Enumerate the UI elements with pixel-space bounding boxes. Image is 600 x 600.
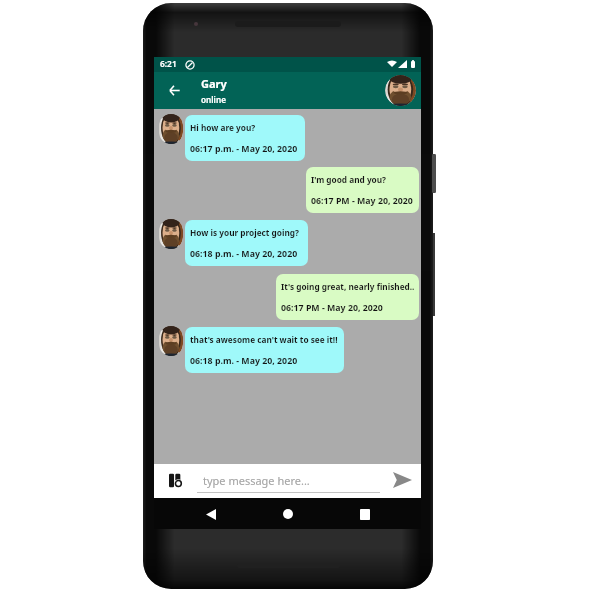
staticText: that's awesome can't wait to see it!! (190, 334, 338, 345)
staticText: 06:17 p.m. - May 20, 2020 (190, 143, 298, 155)
button[interactable]: How is your project going? (185, 220, 308, 266)
button[interactable]: It's going great, nearly finished.. (276, 274, 419, 320)
button[interactable]: that's awesome can't wait to see it!! (185, 327, 344, 373)
button[interactable]: Hi how are you? (185, 115, 305, 161)
staticText: I'm good and you? (311, 174, 387, 185)
button[interactable]: Send (393, 472, 412, 488)
staticText: online (201, 94, 226, 105)
staticText: 06:18 p.m. - May 20, 2020 (190, 355, 298, 367)
staticText: How is your project going? (190, 227, 299, 238)
button[interactable]: Back (198, 501, 224, 527)
button[interactable]: Gary profile photo (385, 75, 416, 106)
button[interactable]: Recent apps (352, 501, 378, 527)
staticText: 06:18 p.m. - May 20, 2020 (190, 248, 298, 260)
button[interactable]: Home (275, 501, 301, 527)
button[interactable]: I'm good and you? (306, 167, 419, 213)
button[interactable]: Attach media (169, 473, 183, 488)
button[interactable]: Back (163, 79, 185, 101)
staticText: type message here... (203, 473, 310, 488)
staticText: 06:17 PM - May 20, 2020 (281, 302, 383, 314)
staticText: Hi how are you? (190, 122, 256, 133)
staticText: It's going great, nearly finished.. (281, 281, 415, 292)
staticText: 06:17 PM - May 20, 2020 (311, 195, 413, 207)
staticText: Gary (201, 76, 227, 91)
staticText: 6:21 (160, 58, 177, 69)
